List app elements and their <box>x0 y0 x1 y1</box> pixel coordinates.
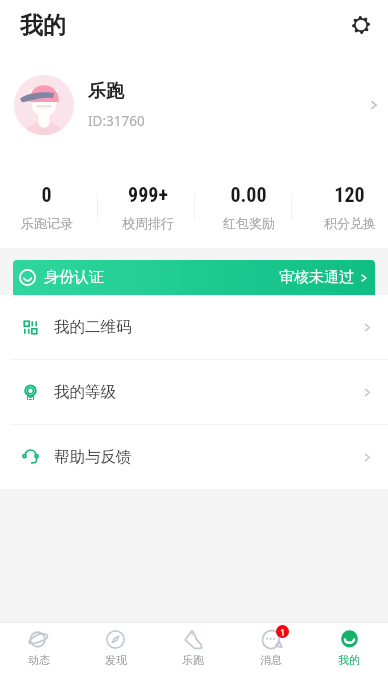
button[interactable]: Settings <box>345 9 377 41</box>
button[interactable]: 乐跑 <box>154 623 232 673</box>
button[interactable]: 1 <box>232 623 310 673</box>
staticText: 动态 <box>28 653 50 667</box>
staticText: 校周排行 <box>122 215 174 231</box>
staticText: 我的 <box>338 653 360 667</box>
button[interactable]: 帮助与反馈 <box>0 425 388 489</box>
staticText: 乐跑记录 <box>21 215 73 231</box>
staticText: 积分兑换 <box>324 215 376 231</box>
button[interactable]: 999+ <box>97 165 198 248</box>
staticText: 1 <box>280 626 286 638</box>
button[interactable]: 120 <box>299 165 388 248</box>
staticText: 审核未通过 <box>279 268 354 287</box>
button[interactable]: 发现 <box>77 623 154 673</box>
button[interactable]: 我的等级 <box>0 360 388 424</box>
button[interactable]: 我的 <box>310 623 388 673</box>
button[interactable]: 我的二维码 <box>0 295 388 359</box>
button[interactable]: 0 <box>0 165 97 248</box>
staticText: 我的 <box>20 11 66 40</box>
staticText: 我的二维码 <box>54 317 132 337</box>
button[interactable]: 乐跑 <box>0 50 388 160</box>
staticText: 乐跑 <box>88 80 124 103</box>
staticText: 999+ <box>128 183 168 206</box>
staticText: 120 <box>334 183 365 206</box>
staticText: 红包奖励 <box>223 215 275 231</box>
button[interactable]: 动态 <box>0 623 77 673</box>
staticText: 消息 <box>260 653 282 667</box>
staticText: 0 <box>41 183 52 206</box>
staticText: 乐跑 <box>182 653 204 667</box>
staticText: ID:31760 <box>88 112 145 130</box>
button[interactable]: 身份认证 <box>13 260 375 295</box>
staticText: 发现 <box>105 653 127 667</box>
staticText: 帮助与反馈 <box>54 447 132 467</box>
staticText: 身份认证 <box>44 268 104 287</box>
staticText: 0.00 <box>230 183 267 206</box>
staticText: 我的等级 <box>54 382 116 402</box>
button[interactable]: 0.00 <box>198 165 299 248</box>
